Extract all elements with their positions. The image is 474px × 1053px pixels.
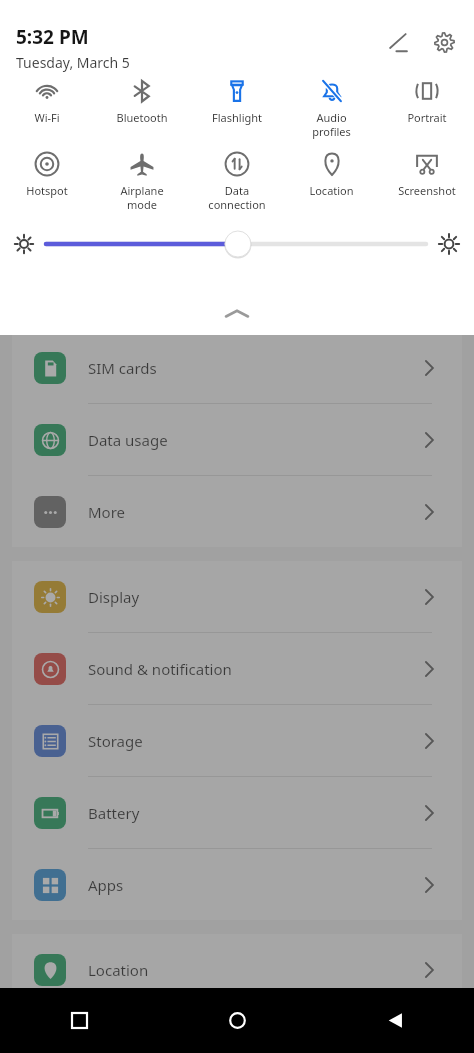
button[interactable]: Audio profiles xyxy=(284,74,379,141)
staticText: Sound & notification xyxy=(88,659,422,679)
button[interactable]: Wi-Fi xyxy=(0,74,94,127)
button[interactable]: Location xyxy=(12,934,462,1005)
button[interactable]: Brightness xyxy=(46,224,426,264)
staticText: Data usage xyxy=(88,430,422,450)
staticText: Storage xyxy=(88,731,422,751)
button[interactable]: Portrait xyxy=(379,74,474,127)
button[interactable]: Storage xyxy=(12,705,462,776)
button[interactable]: Collapse xyxy=(0,299,474,329)
button[interactable]: More xyxy=(12,476,462,547)
button[interactable]: Home xyxy=(158,988,316,1053)
staticText: 5:32 PM xyxy=(16,24,89,50)
button[interactable]: Sound & notification xyxy=(12,633,462,704)
staticText: Location xyxy=(88,960,422,980)
button[interactable]: SIM cards xyxy=(12,332,462,403)
staticText: Location xyxy=(309,183,354,198)
button[interactable]: Data usage xyxy=(12,404,462,475)
staticText: Screenshot xyxy=(398,183,456,198)
staticText: More xyxy=(88,502,422,522)
button[interactable]: Apps xyxy=(12,849,462,920)
staticText: SIM cards xyxy=(88,358,422,378)
staticText: Hotspot xyxy=(26,183,68,198)
button[interactable]: Edit quick settings xyxy=(380,24,416,60)
button[interactable]: Flashlight xyxy=(189,74,284,127)
staticText: Portrait xyxy=(407,110,447,125)
staticText: Audio profiles xyxy=(312,110,351,139)
staticText: Apps xyxy=(88,875,422,895)
staticText: Wi-Fi xyxy=(34,110,60,125)
button[interactable]: Back xyxy=(316,988,474,1053)
button[interactable]: Data connection xyxy=(189,147,284,214)
button[interactable]: Hotspot xyxy=(0,147,94,200)
staticText: Tuesday, March 5 xyxy=(16,53,130,72)
staticText: Battery xyxy=(88,803,422,823)
button[interactable]: Battery xyxy=(12,777,462,848)
button[interactable]: Airplane mode xyxy=(94,147,189,214)
staticText: Airplane mode xyxy=(120,183,164,212)
staticText: Bluetooth xyxy=(116,110,168,125)
staticText: Data connection xyxy=(208,183,266,212)
button[interactable]: Recents xyxy=(0,988,158,1053)
staticText: Flashlight xyxy=(212,110,262,125)
button[interactable]: Location xyxy=(284,147,379,200)
staticText: Display xyxy=(88,587,422,607)
button[interactable]: Display xyxy=(12,561,462,632)
button[interactable]: Screenshot xyxy=(379,147,474,200)
button[interactable]: Settings xyxy=(426,24,462,60)
button[interactable]: Bluetooth xyxy=(94,74,189,127)
